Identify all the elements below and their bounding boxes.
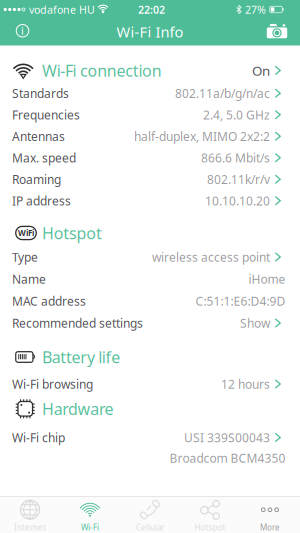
staticText: Wi-Fi connection	[42, 60, 162, 81]
staticText: Recommended settings	[12, 315, 143, 331]
staticText: Show	[240, 315, 270, 331]
staticText: Max. speed	[12, 150, 76, 166]
staticText: 2.4, 5.0 GHz	[203, 107, 270, 123]
staticText: Battery life	[42, 346, 120, 368]
staticText: Wi-Fi browsing	[12, 376, 93, 392]
button[interactable]: Cellular	[120, 497, 180, 533]
staticText: Wi-Fi	[81, 522, 99, 533]
button[interactable]: Antennas	[0, 125, 300, 147]
staticText: 866.6 Mbit/s	[201, 150, 270, 166]
button[interactable]: Wi-Fi chip	[0, 426, 300, 448]
button[interactable]: IP address	[0, 190, 300, 211]
staticText: WiFi	[18, 228, 34, 238]
staticText: half-duplex, MIMO 2x2:2	[134, 128, 270, 144]
staticText: Cellular	[136, 522, 164, 533]
button[interactable]: Camera	[266, 23, 288, 39]
staticText: IP address	[12, 193, 71, 209]
staticText: On	[252, 62, 270, 79]
button[interactable]: Wi-Fi browsing	[0, 373, 300, 395]
button[interactable]: Wi-Fi	[60, 497, 120, 533]
staticText: Hotspot	[194, 522, 225, 533]
button[interactable]: About	[12, 21, 32, 41]
staticText: Antennas	[12, 128, 65, 144]
staticText: Frequencies	[12, 107, 80, 123]
staticText: Hardware	[42, 398, 114, 419]
staticText: Hotspot	[42, 222, 102, 244]
button[interactable]: Frequencies	[0, 104, 300, 125]
button[interactable]: Roaming	[0, 168, 300, 190]
staticText: iHome	[248, 271, 285, 287]
staticText: Wi-Fi chip	[12, 429, 65, 445]
staticText: vodafone HU	[29, 2, 95, 17]
staticText: 802.11a/b/g/n/ac	[175, 85, 270, 101]
button[interactable]: Max. speed	[0, 147, 300, 168]
staticText: Wi-Fi Info	[116, 22, 183, 41]
staticText: Broadcom BCM4350	[169, 450, 285, 466]
button[interactable]: Recommended settings	[0, 312, 300, 334]
staticText: wireless access point	[152, 249, 270, 265]
button[interactable]: Internet	[0, 497, 60, 533]
staticText: MAC address	[12, 293, 86, 309]
staticText: Roaming	[12, 171, 61, 187]
button[interactable]: Standards	[0, 82, 300, 104]
staticText: 22:02	[138, 2, 165, 17]
staticText: Internet	[14, 522, 46, 533]
staticText: i	[21, 23, 24, 38]
button[interactable]: Type	[0, 246, 300, 268]
staticText: 12 hours	[221, 376, 270, 392]
button[interactable]: Wi-Fi connection	[0, 58, 300, 82]
staticText: USI 339S00043	[184, 429, 270, 445]
staticText: Type	[12, 249, 38, 265]
staticText: Standards	[12, 85, 69, 101]
staticText: C:51:1:E6:D4:9D	[195, 293, 285, 309]
staticText: More	[260, 522, 280, 533]
staticText: 802.11k/r/v	[207, 171, 270, 187]
button[interactable]: More	[240, 497, 300, 533]
button[interactable]: Hotspot	[180, 497, 240, 533]
staticText: Name	[12, 271, 46, 287]
staticText: 27%	[245, 2, 266, 17]
staticText: 10.10.10.20	[205, 193, 270, 209]
